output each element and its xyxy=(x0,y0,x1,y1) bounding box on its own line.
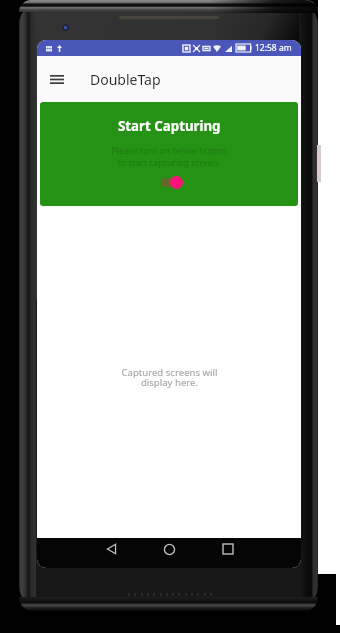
staticText: DoubleTap xyxy=(90,70,161,89)
button[interactable]: Recent apps xyxy=(217,538,239,560)
button[interactable]: Back xyxy=(100,538,122,560)
staticText: 12:58 am xyxy=(255,42,292,54)
button[interactable]: Menu xyxy=(46,68,68,90)
staticText: Please turn on below button to start cap… xyxy=(111,145,227,169)
staticText: Captured screens will display here. xyxy=(121,366,218,389)
button[interactable]: Home xyxy=(158,538,180,560)
button[interactable]: Toggle capturing xyxy=(145,171,193,193)
staticText: Start Capturing xyxy=(118,117,221,135)
button[interactable]: Start Capturing xyxy=(40,102,298,206)
